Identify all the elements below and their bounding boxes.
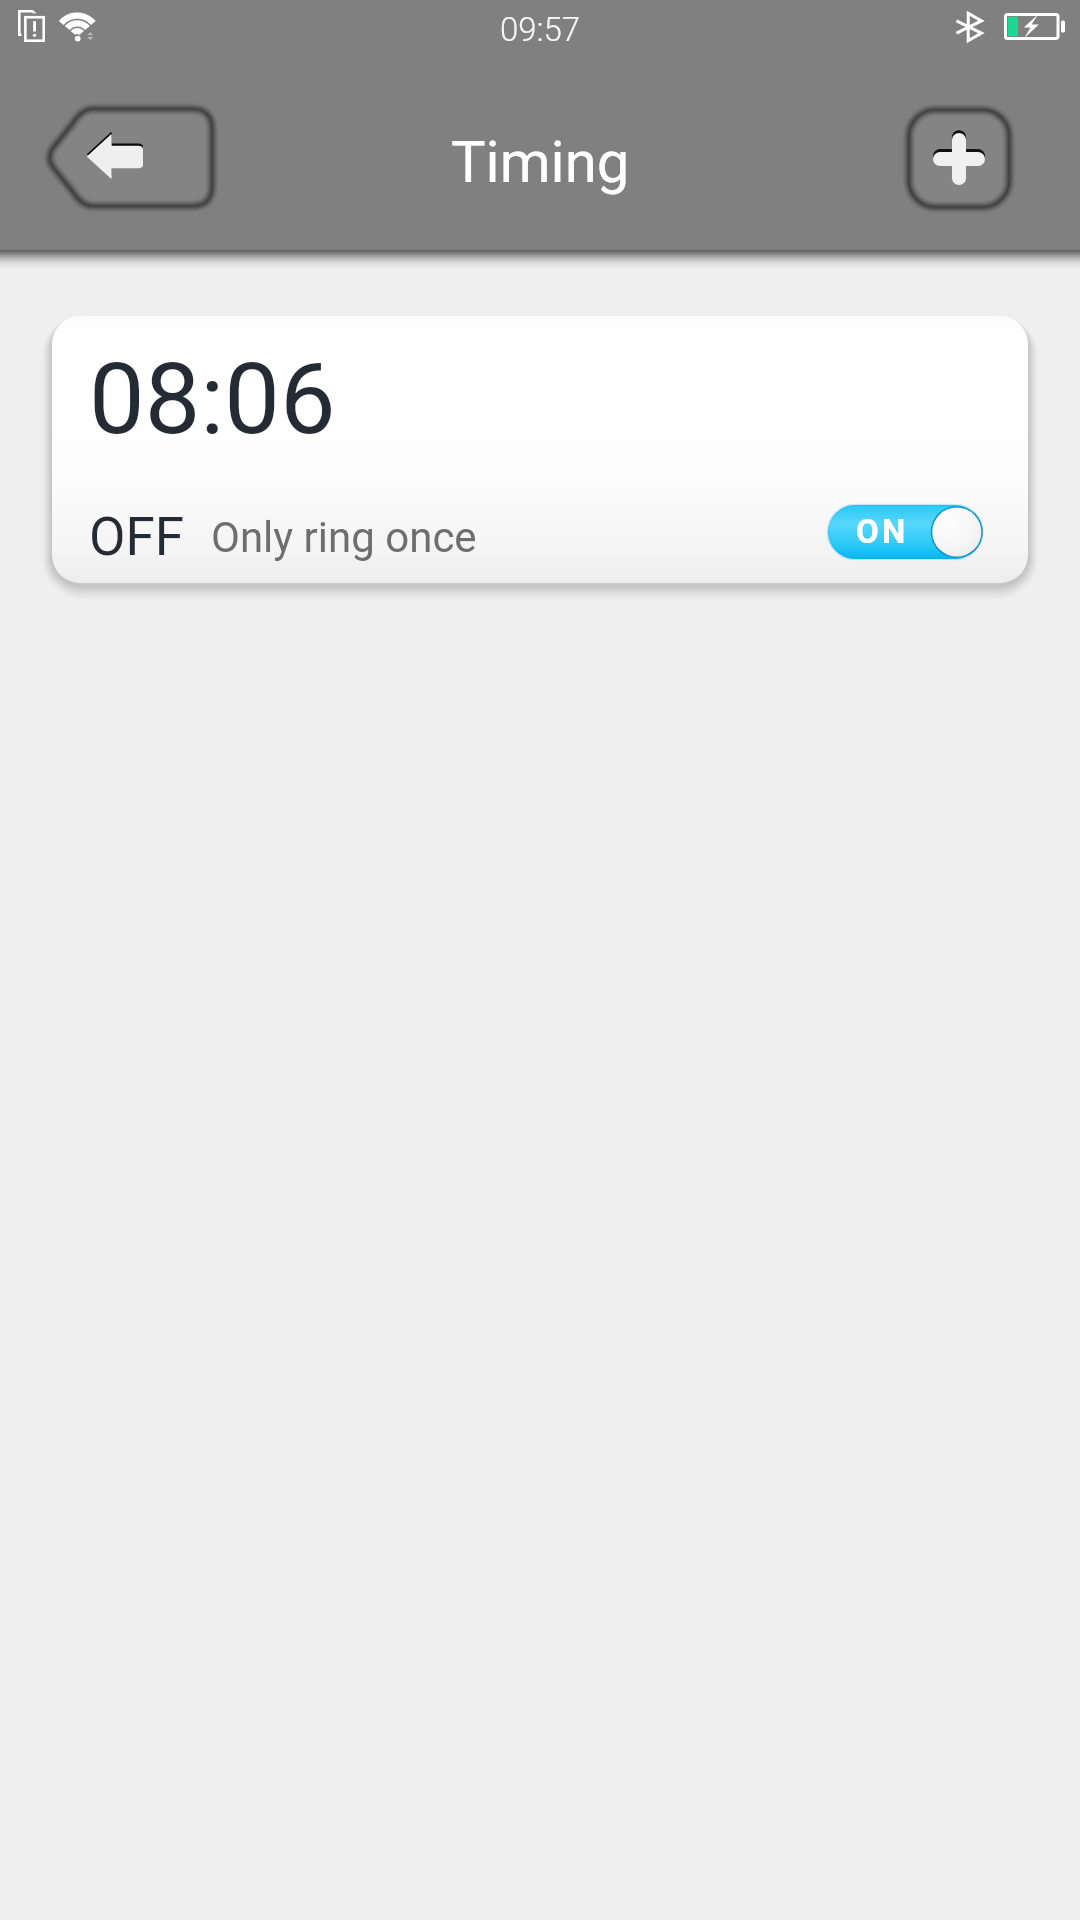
button[interactable]: Back (46, 109, 212, 206)
button[interactable]: Add alarm (909, 110, 1009, 207)
staticText: 09:57 (500, 10, 581, 49)
staticText: Timing (451, 128, 630, 196)
button[interactable]: Alarm enabled (828, 505, 982, 559)
staticText: OFF (89, 506, 185, 568)
staticText: 08:06 (89, 341, 336, 457)
staticText: Only ring once (211, 513, 477, 562)
button[interactable]: 08:06 (52, 316, 1028, 583)
staticText: ON (856, 512, 909, 551)
